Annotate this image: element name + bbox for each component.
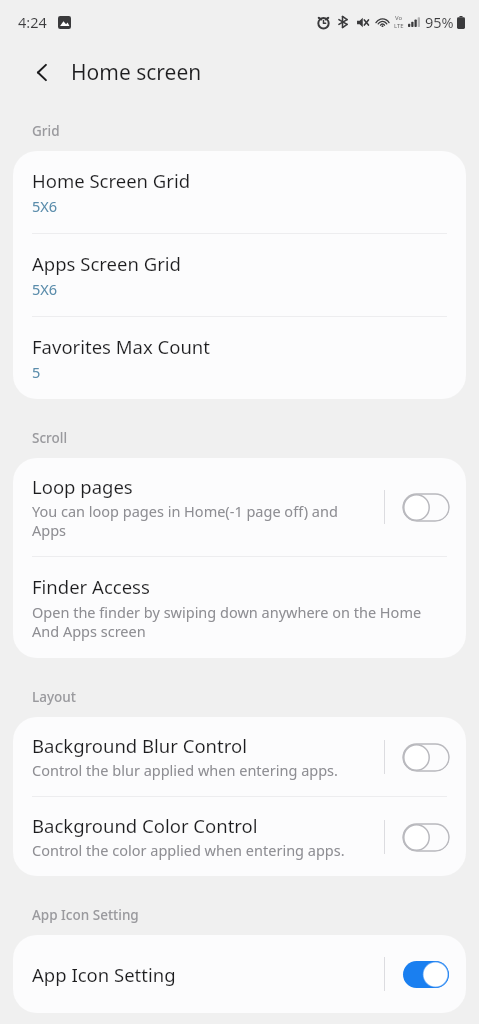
staticText: Vo	[395, 14, 403, 22]
staticText: Control the blur applied when entering a…	[32, 760, 338, 780]
button[interactable]: Background Color Control	[13, 797, 466, 876]
staticText: 95%	[425, 12, 454, 32]
staticText: Background Blur Control	[32, 733, 247, 758]
button[interactable]: Home Screen Grid	[13, 151, 466, 233]
staticText: 4:24	[18, 12, 47, 32]
button[interactable]: Loop pages	[13, 458, 466, 556]
button[interactable]: Back	[22, 52, 62, 92]
staticText: Layout	[32, 688, 479, 706]
staticText: Background Color Control	[32, 813, 258, 838]
staticText: App Icon Setting	[32, 906, 479, 924]
button[interactable]: Loop pages	[402, 492, 450, 522]
staticText: Loop pages	[32, 474, 133, 499]
staticText: App Icon Setting	[32, 962, 176, 987]
button[interactable]: Favorites Max Count	[13, 317, 466, 399]
staticText: Home screen	[71, 58, 202, 87]
staticText: Grid	[32, 122, 479, 140]
staticText: Open the finder by swiping down anywhere…	[32, 602, 447, 641]
staticText: Finder Access	[32, 574, 150, 599]
button[interactable]: Finder Access	[13, 557, 466, 658]
staticText: 5	[32, 362, 41, 382]
staticText: Apps Screen Grid	[32, 251, 181, 276]
staticText: Scroll	[32, 429, 479, 447]
button[interactable]: App Icon Setting	[13, 935, 466, 1013]
staticText: Home Screen Grid	[32, 168, 191, 193]
staticText: 5X6	[32, 196, 58, 216]
button[interactable]: Background Blur Control	[13, 717, 466, 796]
staticText: Favorites Max Count	[32, 334, 210, 359]
button[interactable]: Apps Screen Grid	[13, 234, 466, 316]
staticText: LTE	[394, 22, 404, 30]
staticText: Control the color applied when entering …	[32, 840, 345, 860]
staticText: You can loop pages in Home(-1 page off) …	[32, 501, 374, 540]
button[interactable]: Background Color Control	[402, 822, 450, 852]
staticText: 5X6	[32, 279, 58, 299]
button[interactable]: App Icon Setting	[402, 959, 450, 989]
button[interactable]: Background Blur Control	[402, 742, 450, 772]
